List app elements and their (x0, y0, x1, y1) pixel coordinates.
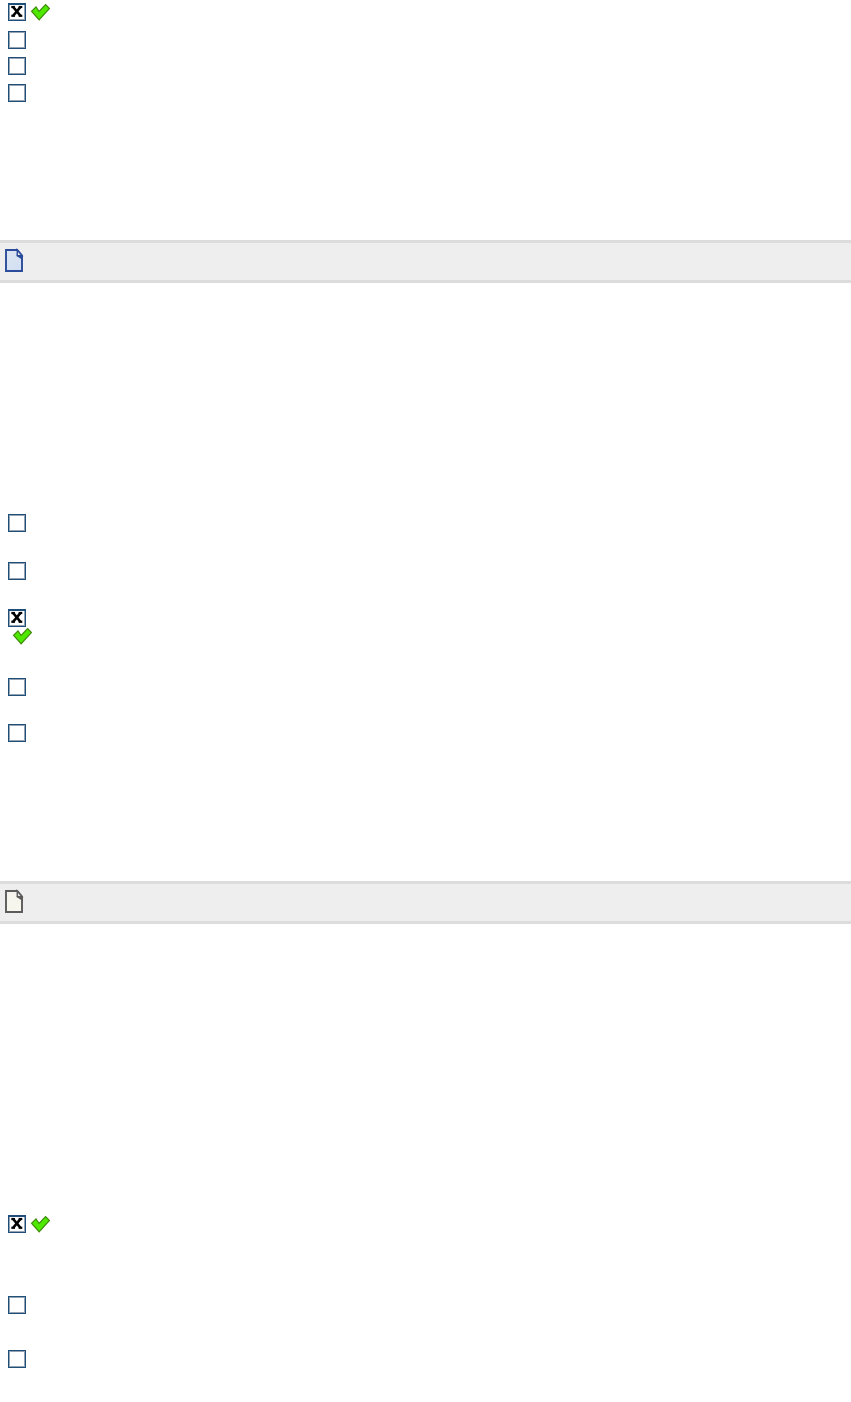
other: Open document (5, 890, 23, 913)
button[interactable]: Open document (0, 240, 851, 283)
button[interactable]: Verified (14, 629, 31, 644)
button[interactable]: Image placeholder (8, 1350, 26, 1368)
button[interactable]: Image placeholder (8, 562, 26, 580)
button[interactable]: Broken image (8, 3, 26, 21)
button[interactable]: Image placeholder (8, 678, 26, 696)
other: Open document (5, 249, 23, 272)
button[interactable]: Broken image (8, 609, 26, 627)
button[interactable]: Image placeholder (8, 31, 26, 49)
button[interactable]: Verified (32, 5, 49, 20)
button[interactable]: Image placeholder (8, 514, 26, 532)
button[interactable]: Broken image (8, 1215, 26, 1233)
button[interactable]: Image placeholder (8, 724, 26, 742)
button[interactable]: Verified (32, 1217, 49, 1232)
button[interactable]: Image placeholder (8, 57, 26, 75)
button[interactable]: Open document (0, 881, 851, 924)
button[interactable]: Image placeholder (8, 84, 26, 102)
button[interactable]: Image placeholder (8, 1296, 26, 1314)
